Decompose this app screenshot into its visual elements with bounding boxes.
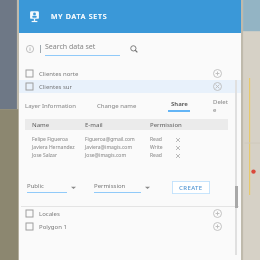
staticText: Name	[32, 121, 85, 129]
staticText: Change name	[97, 102, 137, 110]
staticText: Polygon 1	[39, 223, 67, 231]
button[interactable]: Layer Information	[25, 102, 97, 110]
button[interactable]: Remove Jose Salzar	[174, 152, 181, 159]
staticText: Public	[27, 182, 45, 190]
staticText: E-mail	[85, 121, 150, 129]
staticText: Write	[150, 144, 174, 151]
staticText: Jose@imagis.com	[85, 152, 150, 159]
staticText: Clientes norte	[39, 70, 79, 78]
button[interactable]: Add	[213, 69, 222, 78]
button[interactable]: Locales	[19, 207, 241, 220]
button[interactable]: Share	[159, 100, 199, 112]
button[interactable]: Polygon 1	[19, 220, 241, 233]
button[interactable]: Change name	[97, 102, 159, 110]
button[interactable]: CREATE	[172, 181, 210, 194]
staticText: Clientes sur	[39, 83, 73, 91]
staticText: Search data set	[45, 42, 96, 52]
button[interactable]: Felipe Figueroa	[32, 135, 241, 143]
staticText: Locales	[39, 210, 60, 218]
staticText: CREATE	[179, 184, 203, 192]
button[interactable]: MY DATA SETS	[19, 0, 241, 33]
button[interactable]: Add	[213, 209, 222, 218]
button[interactable]: Jose Salzar	[32, 151, 241, 159]
button[interactable]: Clientes sur	[19, 80, 241, 93]
button[interactable]: Remove Felipe Figueroa	[174, 136, 181, 143]
staticText: Layer Information	[25, 102, 76, 110]
staticText: Javiera@imagis.com	[85, 144, 150, 151]
staticText: Share	[171, 100, 188, 108]
staticText: Felipe Figueroa	[32, 136, 85, 143]
button[interactable]: Search	[128, 43, 140, 55]
staticText: Read	[150, 152, 174, 159]
staticText: Jose Salzar	[32, 152, 85, 159]
staticText: Javiera Hernandez	[32, 144, 85, 151]
staticText: Permission	[150, 121, 182, 129]
staticText: Read	[150, 136, 174, 143]
button[interactable]: Remove Javiera Hernandez	[174, 144, 181, 151]
staticText: MY DATA SETS	[51, 12, 108, 22]
button[interactable]: Delete	[213, 98, 229, 114]
button[interactable]: Clientes norte	[19, 67, 241, 80]
button[interactable]: Javiera Hernandez	[32, 143, 241, 151]
button[interactable]: Permission	[94, 182, 150, 193]
staticText: Delete	[213, 98, 229, 114]
staticText: Permission	[94, 182, 126, 190]
button[interactable]: Add	[213, 222, 222, 231]
button[interactable]: Remove	[213, 82, 222, 91]
staticText: Figueroa@gmail.com	[85, 136, 150, 143]
button[interactable]: Public	[27, 182, 76, 193]
button[interactable]: Info	[23, 42, 37, 56]
